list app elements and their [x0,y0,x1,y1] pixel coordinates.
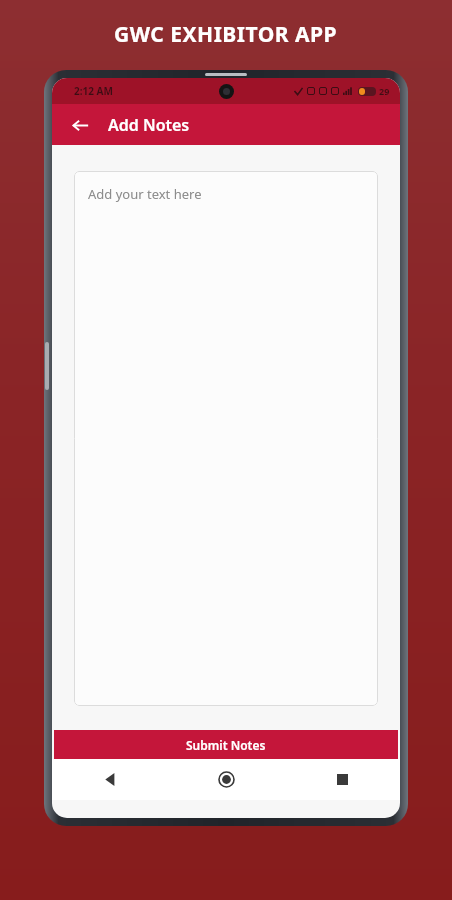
staticText: Add your text here [88,185,202,203]
button[interactable]: Back [64,109,96,141]
staticText: Submit Notes [186,737,266,753]
button[interactable]: Add your text here [74,171,378,706]
button[interactable]: Home [168,759,284,800]
button[interactable]: Back [52,759,168,800]
staticText: 29 [379,85,390,97]
staticText: GWC EXHIBITOR APP [114,20,338,49]
button[interactable]: Recent apps [284,759,400,800]
staticText: Add Notes [108,114,190,136]
staticText: 2:12 AM [74,84,113,98]
button[interactable]: Submit Notes [54,730,398,759]
